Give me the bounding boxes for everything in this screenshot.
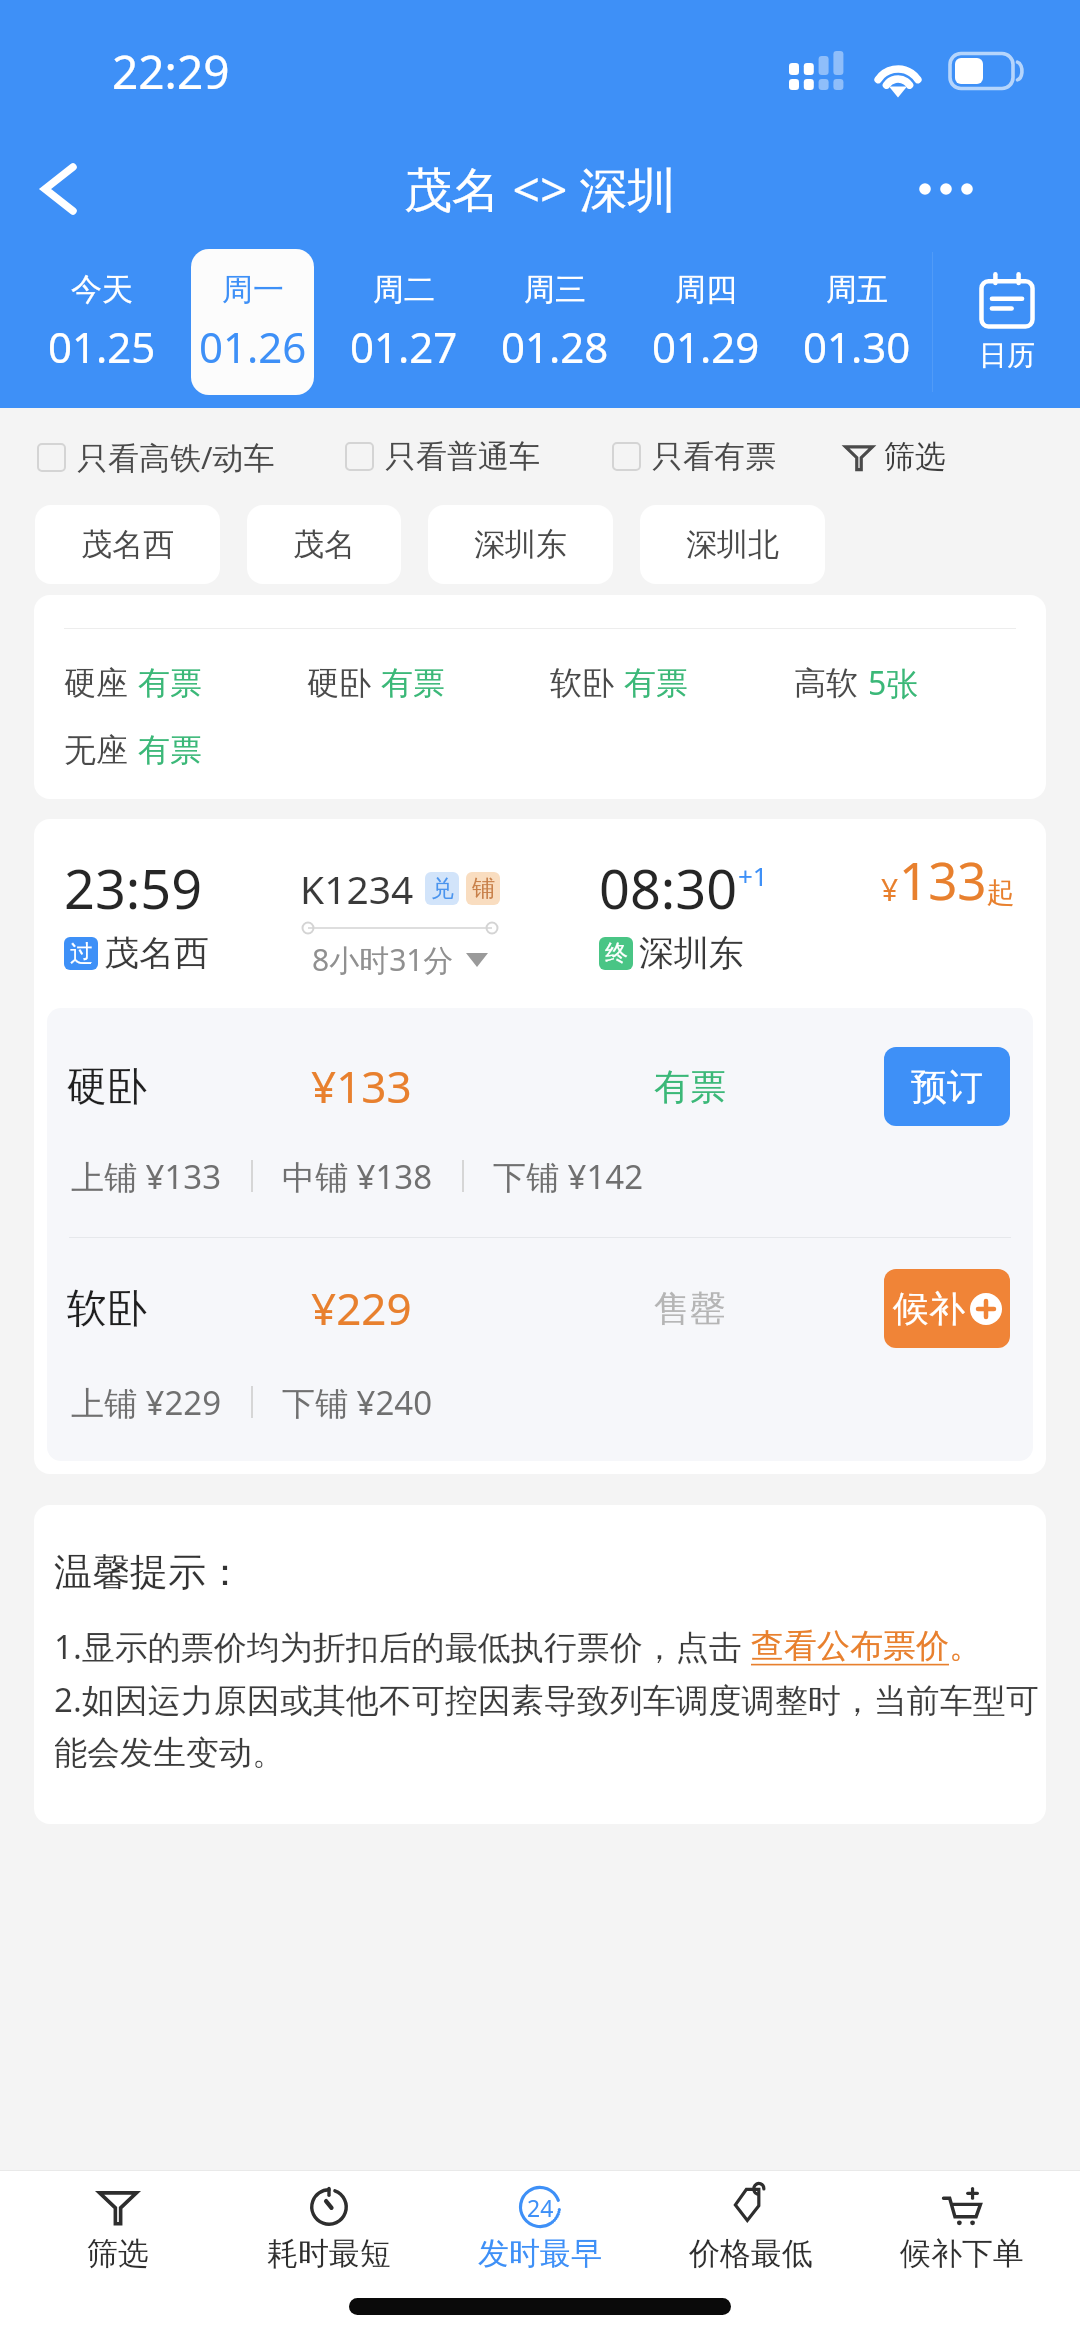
staticText: 周三 <box>524 270 586 309</box>
staticText: 。 <box>949 1625 982 1667</box>
staticText: 硬座 <box>64 663 128 703</box>
staticText: 起 <box>987 875 1015 910</box>
staticText: ¥133 <box>311 1056 412 1116</box>
button[interactable]: Back <box>12 145 106 233</box>
staticText: 高软 <box>794 663 858 703</box>
staticText: 查看公布票价 <box>751 1625 949 1667</box>
button[interactable]: 23:59 <box>34 819 1046 1474</box>
button[interactable]: 候补 <box>884 1269 1010 1348</box>
staticText: 01.28 <box>501 318 609 375</box>
staticText: 软卧 <box>550 663 614 703</box>
button[interactable]: Calendar <box>933 236 1080 408</box>
button[interactable]: 筛选 <box>13 2171 223 2286</box>
staticText: 有票 <box>381 663 445 703</box>
staticText: ¥229 <box>311 1278 412 1338</box>
staticText: 发时最早 <box>478 2234 602 2273</box>
staticText: 只看高铁/动车 <box>77 436 275 478</box>
staticText: 硬卧 <box>67 1061 147 1111</box>
staticText: 下铺 ¥142 <box>493 1154 644 1199</box>
staticText: 下铺 ¥240 <box>282 1380 433 1425</box>
staticText: 今天 <box>71 270 133 309</box>
staticText: 上铺 ¥229 <box>71 1380 222 1425</box>
staticText: 有票 <box>138 730 202 770</box>
staticText: 铺 <box>472 874 495 903</box>
staticText: 茂名西 <box>81 525 174 564</box>
button[interactable]: 预订 <box>884 1047 1010 1126</box>
staticText: 无座 <box>64 730 128 770</box>
staticText: 周五 <box>826 270 888 309</box>
staticText: 软卧 <box>67 1283 147 1333</box>
staticText: 周四 <box>675 270 737 309</box>
button[interactable]: 耗时最短 <box>223 2171 434 2286</box>
staticText: +1 <box>738 858 768 893</box>
button[interactable]: 周一 <box>191 249 314 395</box>
staticText: 温馨提示： <box>54 1548 244 1596</box>
staticText: 深圳东 <box>474 525 567 564</box>
staticText: 深圳北 <box>686 525 779 564</box>
button[interactable]: 只看高铁/动车 <box>35 430 277 484</box>
button[interactable]: 周五 <box>795 249 918 395</box>
staticText: 售罄 <box>654 1286 726 1331</box>
button[interactable]: 只看有票 <box>610 431 778 482</box>
button[interactable]: 周二 <box>342 249 465 395</box>
button[interactable]: 今天 <box>40 249 163 395</box>
staticText: 周一 <box>222 270 284 309</box>
button[interactable]: 24 <box>434 2171 645 2286</box>
button[interactable]: 深圳东 <box>428 505 613 584</box>
staticText: 耗时最短 <box>267 2234 391 2273</box>
staticText: 候补下单 <box>900 2234 1024 2273</box>
staticText: 01.29 <box>652 318 760 375</box>
staticText: 2.如因运力原因或其他不可控因素导致列车调度调整时，当前车型可能会发生变动。 <box>54 1677 1044 1774</box>
staticText: 筛选 <box>884 437 946 476</box>
staticText: 01.25 <box>48 318 156 375</box>
staticText: 预订 <box>911 1064 983 1109</box>
staticText: 过 <box>70 939 93 968</box>
button[interactable]: 周三 <box>493 249 616 395</box>
staticText: 价格最低 <box>689 2234 813 2273</box>
staticText: 有票 <box>654 1064 726 1109</box>
button[interactable]: 价格最低 <box>645 2171 856 2286</box>
button[interactable]: More options <box>898 145 994 233</box>
button[interactable]: 茂名 <box>247 505 401 584</box>
staticText: 上铺 ¥133 <box>71 1154 222 1199</box>
staticText: 1.显示的票价均为折扣后的最低执行票价，点击 <box>54 1624 751 1669</box>
staticText: 周二 <box>373 270 435 309</box>
staticText: 08:30 <box>599 851 738 925</box>
staticText: 兑 <box>431 874 454 903</box>
staticText: 候补 <box>893 1286 965 1331</box>
button[interactable]: 筛选 <box>843 431 948 482</box>
staticText: 有票 <box>624 663 688 703</box>
staticText: 22:29 <box>112 40 230 103</box>
staticText: 24 <box>527 2192 554 2223</box>
staticText: 日历 <box>979 338 1035 373</box>
staticText: 8小时31分 <box>312 939 454 980</box>
staticText: 只看有票 <box>652 437 776 476</box>
staticText: 深圳东 <box>639 931 744 975</box>
staticText: 茂名 <box>293 525 355 564</box>
staticText: ¥ <box>881 869 899 910</box>
staticText: 茂名西 <box>104 931 209 975</box>
staticText: 茂名 <> 深圳 <box>404 156 676 222</box>
button[interactable]: 深圳北 <box>640 505 825 584</box>
staticText: K1234 <box>300 862 414 915</box>
button[interactable]: 查看公布票价 <box>751 1625 949 1667</box>
staticText: 筛选 <box>87 2234 149 2273</box>
staticText: 有票 <box>138 663 202 703</box>
button[interactable]: 只看普通车 <box>343 431 542 482</box>
staticText: 只看普通车 <box>385 437 540 476</box>
button[interactable]: 茂名西 <box>35 505 220 584</box>
staticText: 01.27 <box>350 318 458 375</box>
staticText: 硬卧 <box>307 663 371 703</box>
staticText: 中铺 ¥138 <box>282 1154 433 1199</box>
button[interactable]: 候补下单 <box>856 2171 1067 2286</box>
staticText: 终 <box>605 939 628 968</box>
staticText: 23:59 <box>64 851 203 925</box>
staticText: 5张 <box>868 661 919 705</box>
staticText: 01.30 <box>803 318 911 375</box>
staticText: 133 <box>899 845 987 914</box>
staticText: 01.26 <box>199 318 307 375</box>
button[interactable]: 周四 <box>644 249 767 395</box>
